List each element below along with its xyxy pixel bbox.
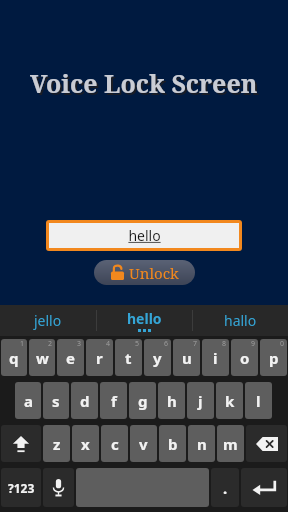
staticText: o: [240, 348, 250, 368]
staticText: j: [198, 391, 203, 411]
button[interactable]: hello: [97, 305, 192, 336]
button[interactable]: b: [159, 425, 186, 462]
button[interactable]: 5: [115, 339, 142, 376]
button[interactable]: 3: [57, 339, 84, 376]
button[interactable]: s: [43, 382, 69, 419]
staticText: q: [9, 348, 19, 368]
button[interactable]: 9: [231, 339, 258, 376]
staticText: 9: [251, 339, 256, 349]
button[interactable]: ?123: [1, 468, 41, 507]
button[interactable]: 2: [29, 339, 55, 376]
staticText: 5: [135, 339, 140, 349]
staticText: g: [138, 391, 148, 411]
button[interactable]: jello: [0, 305, 96, 336]
staticText: i: [213, 348, 218, 368]
staticText: m: [223, 434, 238, 454]
staticText: 4: [106, 339, 111, 349]
button[interactable]: Shift: [1, 425, 41, 462]
button[interactable]: l: [245, 382, 272, 419]
staticText: e: [66, 348, 75, 368]
staticText: x: [81, 434, 90, 454]
staticText: t: [125, 348, 132, 368]
staticText: 3: [77, 339, 82, 349]
button[interactable]: n: [188, 425, 215, 462]
button[interactable]: Enter: [241, 468, 287, 507]
button[interactable]: a: [15, 382, 41, 419]
button[interactable]: z: [43, 425, 70, 462]
staticText: r: [96, 348, 103, 368]
button[interactable]: m: [217, 425, 244, 462]
staticText: f: [111, 391, 117, 411]
staticText: l: [256, 391, 261, 411]
staticText: k: [225, 391, 235, 411]
staticText: s: [52, 391, 60, 411]
staticText: y: [153, 348, 162, 368]
staticText: jello: [34, 311, 62, 330]
button[interactable]: Unlock: [94, 260, 195, 285]
button[interactable]: k: [216, 382, 243, 419]
staticText: hello: [128, 226, 161, 245]
button[interactable]: 0: [260, 339, 287, 376]
button[interactable]: 6: [144, 339, 171, 376]
button[interactable]: j: [187, 382, 214, 419]
staticText: 8: [222, 339, 227, 349]
button[interactable]: 7: [173, 339, 200, 376]
staticText: ?123: [8, 480, 35, 496]
button[interactable]: g: [129, 382, 156, 419]
staticText: c: [111, 434, 119, 454]
staticText: v: [139, 434, 148, 454]
staticText: hallo: [224, 311, 257, 330]
button[interactable]: 4: [86, 339, 113, 376]
staticText: u: [182, 348, 192, 368]
button[interactable]: hello: [49, 223, 239, 248]
button[interactable]: v: [130, 425, 157, 462]
button[interactable]: c: [101, 425, 128, 462]
staticText: 6: [164, 339, 169, 349]
staticText: 7: [193, 339, 198, 349]
button[interactable]: Voice input: [43, 468, 74, 507]
staticText: Voice Lock Screen: [30, 66, 258, 100]
staticText: 2: [48, 339, 53, 349]
staticText: b: [168, 434, 178, 454]
staticText: Voice Lock Screen: [32, 68, 260, 102]
button[interactable]: hallo: [193, 305, 288, 336]
button[interactable]: x: [72, 425, 99, 462]
button[interactable]: f: [100, 382, 127, 419]
button[interactable]: h: [158, 382, 185, 419]
staticText: .: [223, 478, 228, 498]
staticText: 0: [280, 339, 285, 349]
staticText: w: [36, 348, 49, 368]
staticText: 1: [20, 339, 25, 349]
staticText: a: [24, 391, 33, 411]
staticText: Unlock: [129, 263, 179, 283]
staticText: p: [269, 348, 279, 368]
button[interactable]: 8: [202, 339, 229, 376]
staticText: z: [53, 434, 61, 454]
button[interactable]: Delete: [246, 425, 287, 462]
button[interactable]: .: [211, 468, 239, 507]
button[interactable]: 1: [1, 339, 27, 376]
staticText: hello: [127, 309, 162, 328]
button[interactable]: d: [71, 382, 98, 419]
staticText: d: [80, 391, 90, 411]
staticText: h: [167, 391, 177, 411]
staticText: n: [197, 434, 207, 454]
